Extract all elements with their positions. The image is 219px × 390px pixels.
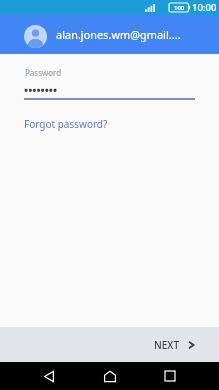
staticText: Password: [25, 67, 62, 78]
button[interactable]: Recents: [154, 362, 186, 390]
staticText: NEXT: [154, 338, 180, 352]
button[interactable]: Home: [94, 362, 126, 390]
button[interactable]: Back: [33, 362, 65, 390]
button[interactable]: alan.jones.wm@gmail....: [0, 15, 219, 54]
button[interactable]: Forgot password?: [24, 117, 108, 131]
staticText: 100: [174, 4, 185, 12]
button[interactable]: NEXT: [140, 330, 219, 360]
staticText: 10:00: [192, 1, 217, 14]
staticText: ••••••••: [24, 82, 58, 97]
staticText: alan.jones.wm@gmail....: [56, 27, 181, 42]
staticText: Forgot password?: [24, 117, 108, 131]
